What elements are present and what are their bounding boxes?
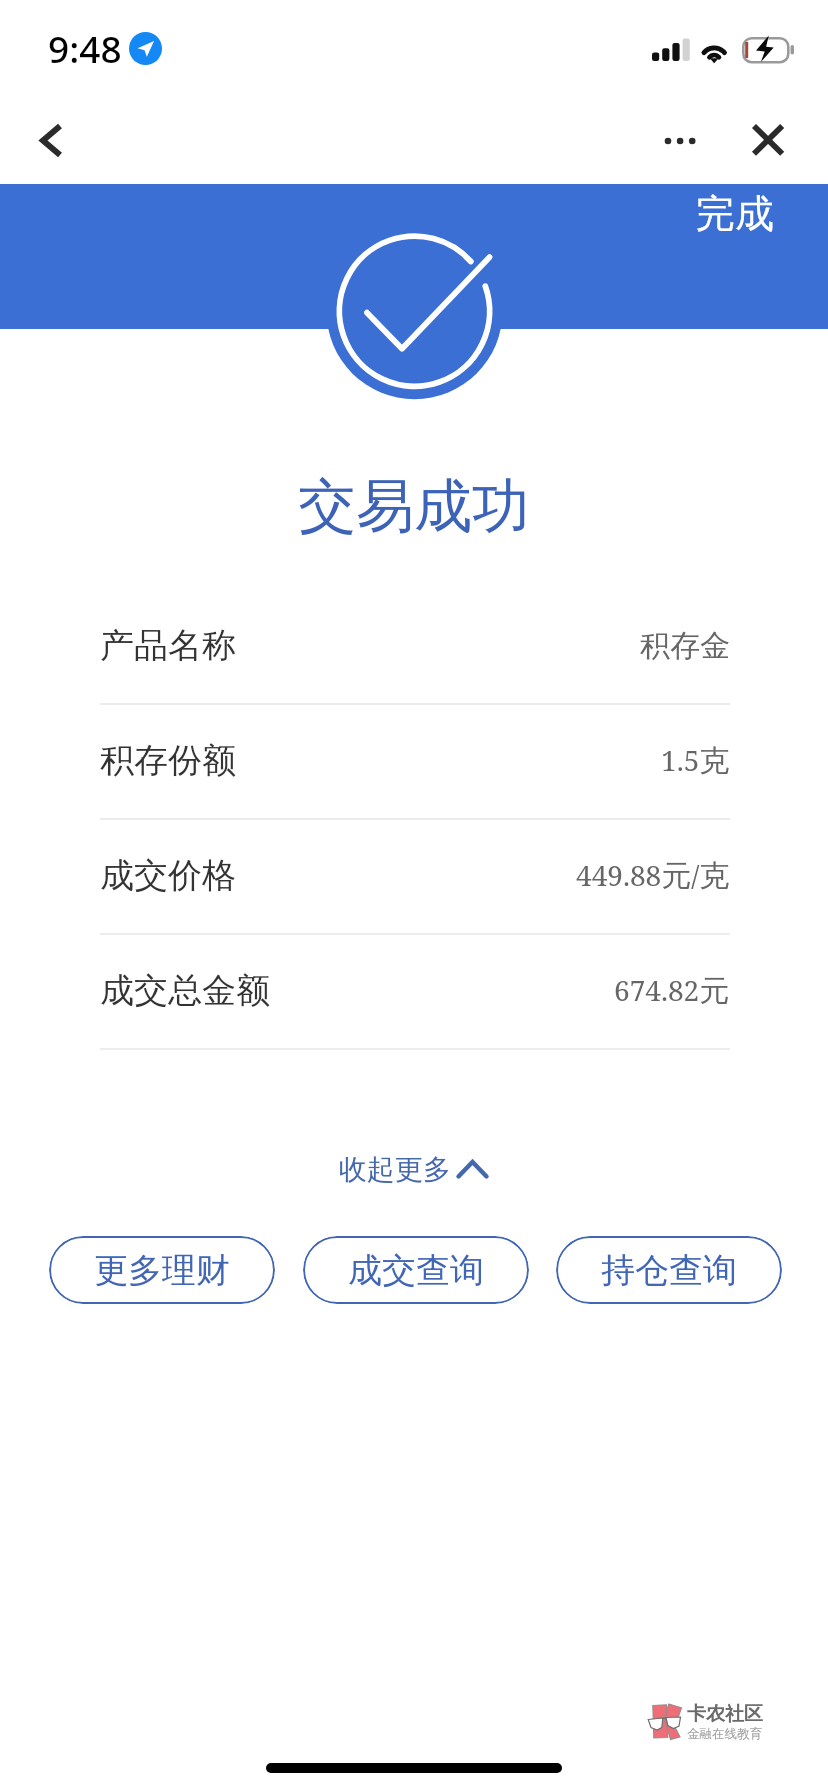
- other: 卡农社区 watermark: [645, 1698, 770, 1743]
- button[interactable]: 收起更多: [325, 1142, 503, 1197]
- button[interactable]: Back: [14, 106, 82, 174]
- button[interactable]: 更多理财: [49, 1236, 275, 1304]
- staticText: 积存金: [640, 627, 730, 665]
- staticText: 1.5克: [661, 741, 730, 780]
- staticText: 收起更多: [339, 1152, 451, 1187]
- staticText: 更多理财: [94, 1249, 230, 1292]
- staticText: 449.88元/克: [576, 856, 730, 895]
- button[interactable]: Close: [734, 106, 802, 174]
- staticText: 成交查询: [348, 1249, 484, 1292]
- staticText: 674.82元: [614, 971, 730, 1010]
- button[interactable]: More options: [646, 107, 714, 175]
- button[interactable]: 产品名称: [0, 588, 828, 703]
- button[interactable]: 积存份额: [0, 703, 828, 818]
- staticText: 持仓查询: [601, 1249, 737, 1292]
- button[interactable]: 持仓查询: [556, 1236, 782, 1304]
- staticText: 成交价格: [100, 854, 236, 897]
- staticText: 产品名称: [100, 624, 236, 667]
- button[interactable]: 成交价格: [0, 818, 828, 933]
- staticText: 金融在线教育: [687, 1726, 762, 1742]
- staticText: 卡农社区: [687, 1702, 763, 1726]
- staticText: 成交总金额: [100, 969, 270, 1012]
- staticText: 积存份额: [100, 739, 236, 782]
- button[interactable]: 成交查询: [303, 1236, 529, 1304]
- staticText: 9:48: [48, 23, 122, 73]
- button[interactable]: 成交总金额: [0, 933, 828, 1048]
- staticText: 完成: [696, 189, 774, 238]
- staticText: 交易成功: [0, 470, 828, 543]
- button[interactable]: 完成: [678, 184, 790, 244]
